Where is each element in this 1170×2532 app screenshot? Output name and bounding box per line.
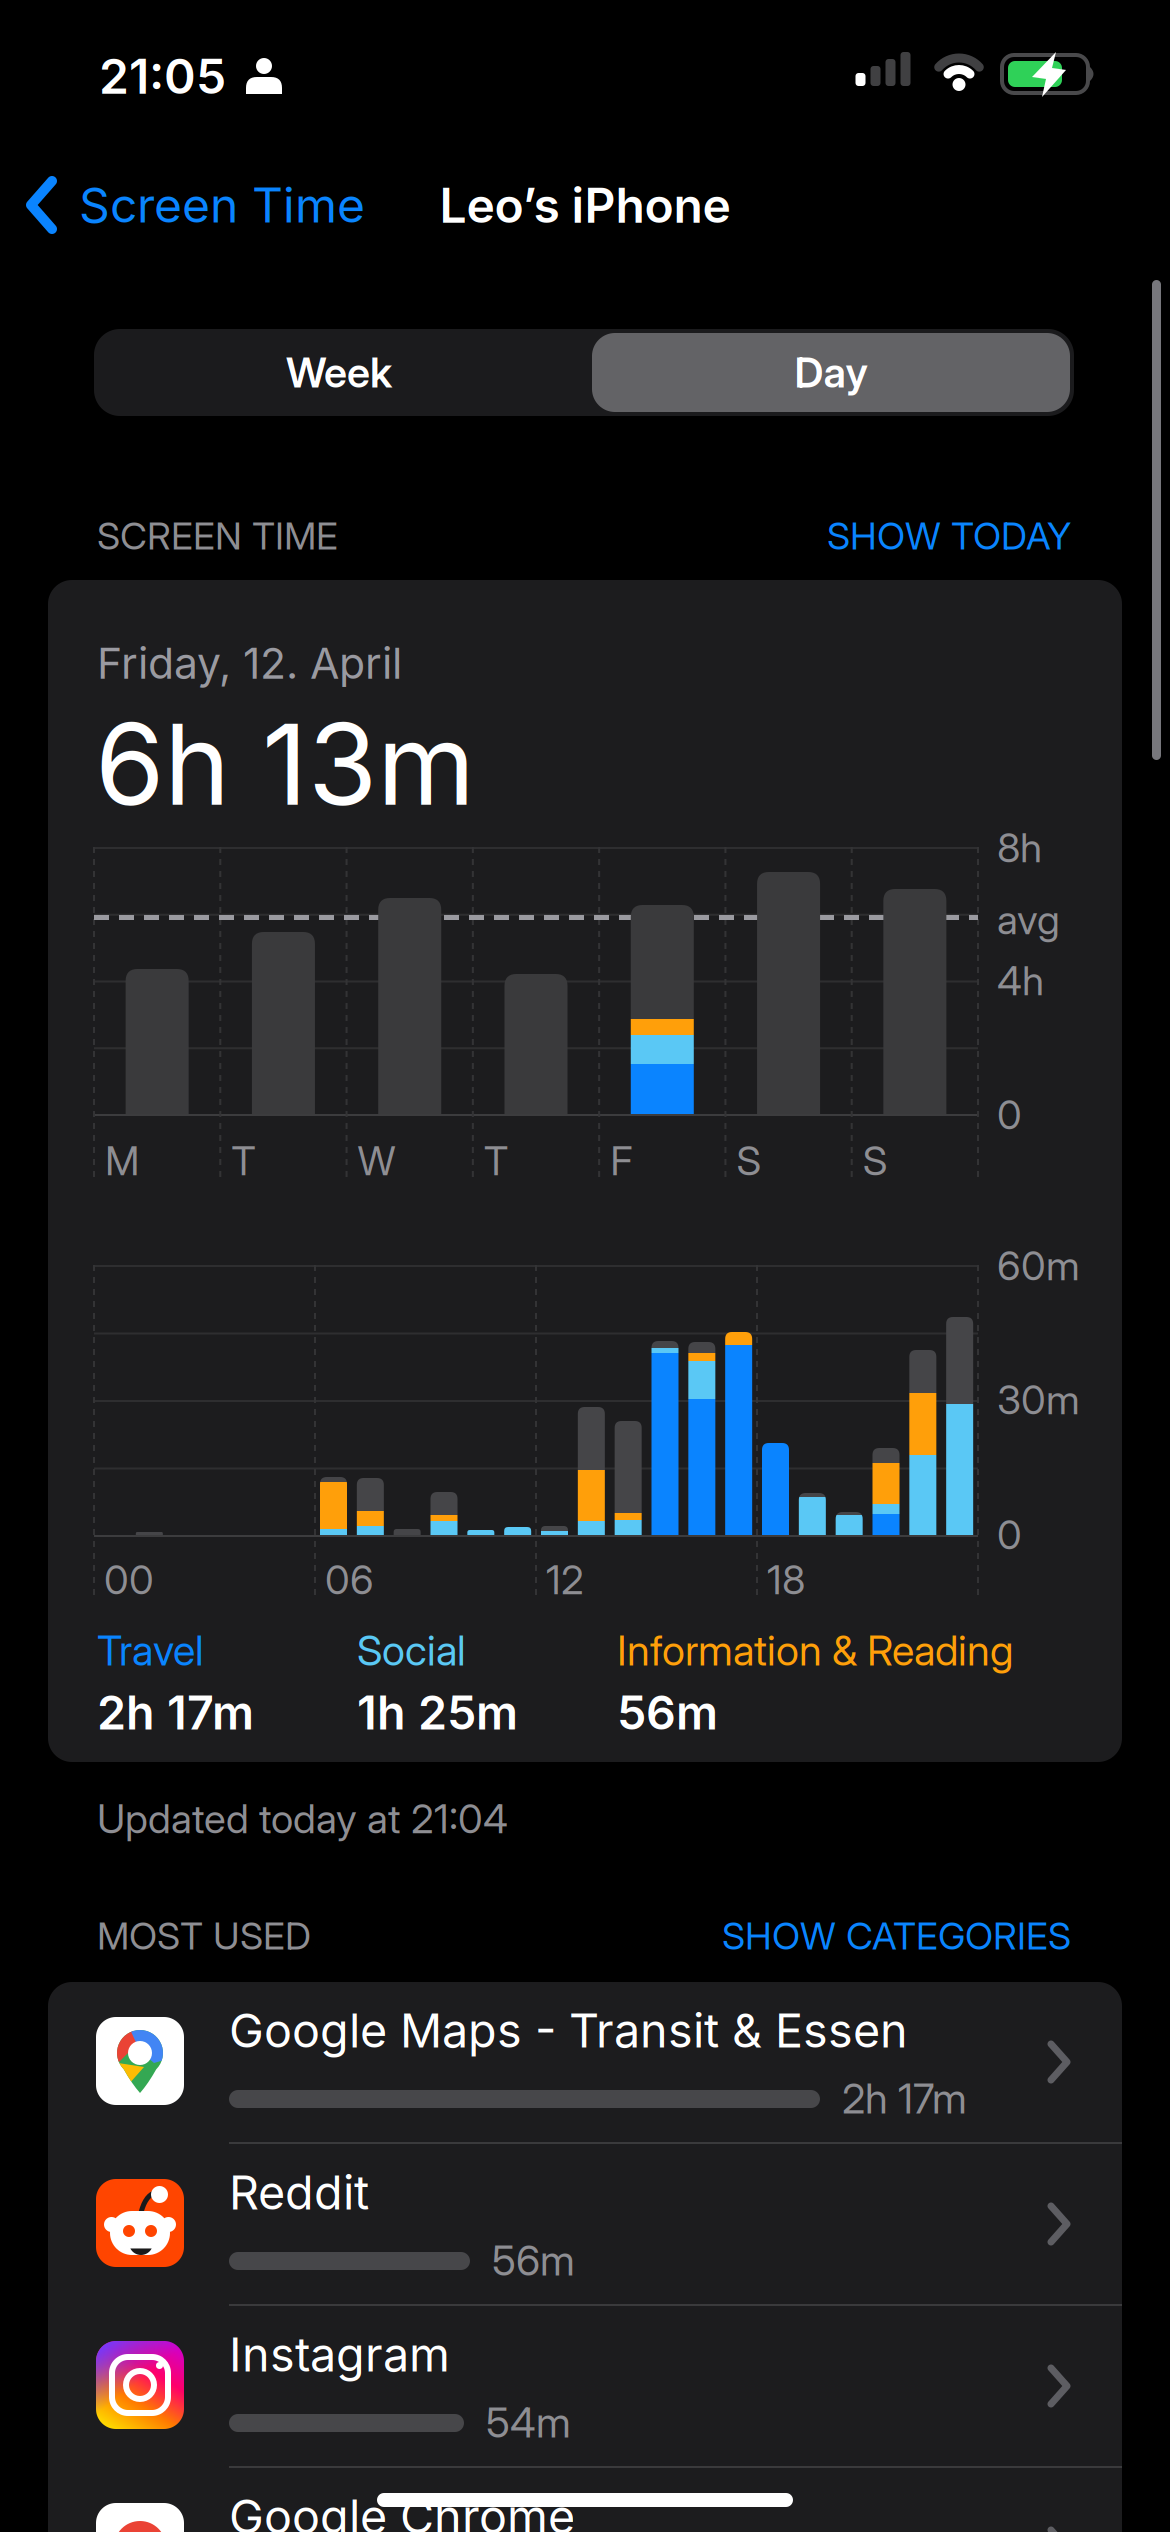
button[interactable]: Back	[25, 176, 365, 234]
button[interactable]: Instagram	[48, 2306, 1122, 2468]
staticText: MOST USED	[97, 1914, 311, 1958]
staticText: Information & Reading	[617, 1626, 1013, 1675]
staticText: T	[231, 1137, 256, 1184]
staticText: 00	[104, 1556, 154, 1603]
staticText: Screen Time	[79, 177, 365, 233]
staticText: Leo’s iPhone	[439, 177, 730, 234]
staticText: 0	[997, 1091, 1022, 1138]
staticText: Instagram	[229, 2327, 450, 2382]
staticText: Updated today at 21:04	[97, 1795, 508, 1842]
button[interactable]: Google Maps - Transit & Essen	[48, 1982, 1122, 2144]
staticText: 56m	[492, 2236, 575, 2285]
staticText: avg	[997, 896, 1060, 943]
staticText: SHOW CATEGORIES	[722, 1914, 1071, 1958]
staticText: Travel	[97, 1626, 204, 1675]
button[interactable]: Day	[588, 329, 1074, 416]
button[interactable]: Week	[94, 329, 584, 416]
staticText: 1h 25m	[357, 1685, 518, 1740]
staticText: W	[358, 1137, 396, 1184]
staticText: 60m	[997, 1242, 1080, 1289]
staticText: Friday, 12. April	[97, 638, 402, 688]
staticText: 30m	[997, 1376, 1080, 1423]
staticText: T	[484, 1137, 509, 1184]
staticText: 54m	[486, 2398, 571, 2447]
staticText: Google Chrome	[229, 2489, 575, 2532]
staticText: S	[736, 1137, 761, 1184]
staticText: 12	[546, 1556, 584, 1603]
button[interactable]: Reddit	[48, 2144, 1122, 2306]
staticText: SCREEN TIME	[97, 514, 338, 558]
staticText: 06	[325, 1556, 374, 1603]
staticText: Week	[286, 348, 392, 397]
staticText: 0	[997, 1511, 1022, 1558]
button[interactable]: SHOW TODAY	[827, 514, 1071, 558]
staticText: F	[610, 1137, 632, 1184]
staticText: 56m	[617, 1685, 718, 1740]
staticText: 18	[767, 1556, 805, 1603]
staticText: 4h	[997, 957, 1044, 1004]
staticText: 21:05	[99, 48, 226, 105]
staticText: Reddit	[229, 2165, 369, 2220]
staticText: SHOW TODAY	[827, 514, 1071, 558]
button[interactable]: SHOW CATEGORIES	[722, 1914, 1071, 1958]
staticText: M	[105, 1137, 139, 1184]
staticText: Social	[357, 1626, 466, 1675]
staticText: 6h 13m	[95, 698, 475, 830]
staticText: 8h	[997, 824, 1042, 871]
staticText: 2h 17m	[97, 1685, 254, 1740]
staticText: Day	[794, 348, 867, 397]
staticText: S	[863, 1137, 888, 1184]
staticText: 2h 17m	[842, 2074, 967, 2123]
button[interactable]: Google Chrome	[48, 2468, 1122, 2532]
staticText: Google Maps - Transit & Essen	[229, 2003, 908, 2058]
